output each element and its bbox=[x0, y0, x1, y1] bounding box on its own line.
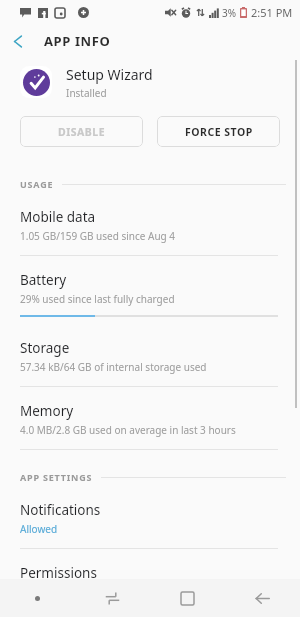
button[interactable]: Permissions bbox=[0, 551, 300, 579]
staticText: Setup Wizard bbox=[66, 65, 153, 84]
staticText: 2:51 PM bbox=[251, 5, 293, 20]
staticText: 4.0 MB/2.8 GB used on average in last 3 … bbox=[20, 423, 236, 437]
button[interactable]: Memory bbox=[0, 389, 300, 452]
staticText: FORCE STOP bbox=[185, 125, 253, 139]
staticText: 3% bbox=[222, 6, 237, 20]
staticText: Permissions bbox=[20, 564, 97, 579]
staticText: Installed bbox=[66, 86, 107, 100]
button[interactable]: Storage bbox=[0, 326, 300, 389]
staticText: Memory bbox=[20, 402, 74, 420]
staticText: 29% used since last fully charged bbox=[20, 292, 175, 306]
button[interactable]: Battery bbox=[0, 258, 300, 326]
button[interactable]: Setup Wizard bbox=[0, 58, 300, 106]
button[interactable]: Back bbox=[225, 579, 300, 617]
button[interactable]: Assistant bbox=[0, 579, 75, 617]
staticText: Notifications bbox=[20, 501, 101, 519]
button[interactable]: Hide navigation bar bbox=[75, 579, 150, 617]
staticText: Mobile data bbox=[20, 208, 96, 226]
button[interactable]: DISABLE bbox=[20, 116, 143, 147]
staticText: 57.34 kB/64 GB of internal storage used bbox=[20, 360, 207, 374]
button[interactable]: FORCE STOP bbox=[157, 116, 280, 147]
staticText: Storage bbox=[20, 339, 70, 357]
button[interactable]: Notifications bbox=[0, 488, 300, 551]
button[interactable]: Recent apps bbox=[150, 579, 225, 617]
staticText: USAGE bbox=[20, 178, 54, 190]
staticText: 1.05 GB/159 GB used since Aug 4 bbox=[20, 229, 176, 243]
staticText: APP SETTINGS bbox=[20, 471, 93, 483]
staticText: APP INFO bbox=[44, 32, 111, 50]
button[interactable]: Mobile data bbox=[0, 195, 300, 258]
button[interactable]: Back bbox=[0, 24, 36, 58]
staticText: Battery bbox=[20, 271, 67, 289]
staticText: Allowed bbox=[20, 522, 58, 536]
staticText: DISABLE bbox=[58, 125, 106, 139]
